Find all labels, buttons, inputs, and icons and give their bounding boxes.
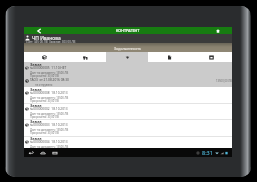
staticText: Долг по документу: 13500 ЛВ bbox=[30, 71, 69, 75]
staticText: Просрочено: 30,00 ЛВ bbox=[30, 74, 59, 78]
button[interactable]: Documents bbox=[24, 52, 65, 62]
staticText: ЧП Иванова bbox=[32, 35, 61, 42]
button[interactable]: Orders bbox=[148, 52, 190, 62]
button[interactable]: Заказ bbox=[24, 103, 232, 119]
staticText: Заказ bbox=[30, 103, 42, 108]
staticText: 8:31 bbox=[202, 149, 213, 156]
button[interactable]: Back bbox=[25, 148, 37, 157]
button[interactable]: Home bbox=[211, 27, 225, 34]
staticText: Долг по документу: 13500 ЛВ bbox=[30, 96, 69, 100]
staticText: Долг по документу: 13500 ЛВ bbox=[30, 128, 69, 132]
staticText: 13500,00 ЛВ bbox=[216, 79, 232, 83]
button[interactable]: Заказ bbox=[24, 62, 232, 87]
staticText: Долг по документу: 13500 ЛВ bbox=[30, 112, 69, 116]
staticText: Заказ bbox=[30, 62, 42, 67]
button[interactable]: Заказ bbox=[24, 87, 232, 103]
button[interactable]: Reports bbox=[190, 52, 232, 62]
staticText: Задолженность bbox=[114, 46, 142, 51]
button[interactable]: Shipments bbox=[65, 52, 106, 62]
staticText: №000000004 18.10.2013 bbox=[30, 140, 68, 144]
staticText: Заказ bbox=[30, 119, 42, 124]
staticText: Просрочено: 30,00 ЛВ bbox=[30, 148, 59, 152]
staticText: Просрочено: 30,00 ЛВ bbox=[30, 131, 59, 135]
staticText: Долг по документу: 13500 ЛВ bbox=[30, 145, 69, 149]
staticText: ТАОЗ от 21.08.2016 08:30 bbox=[30, 78, 69, 82]
button[interactable]: Back bbox=[24, 27, 48, 34]
button[interactable]: Recent apps bbox=[49, 148, 61, 157]
button[interactable]: Заказ bbox=[24, 119, 232, 135]
staticText: Заказ bbox=[30, 136, 42, 141]
button[interactable]: Заказ bbox=[24, 136, 232, 152]
staticText: Заказ bbox=[30, 87, 42, 92]
staticText: №000000002 18.10.2013 bbox=[30, 107, 68, 111]
staticText: №000000008 18.10.2013 bbox=[30, 91, 68, 95]
staticText: Счет: 345,00 ЛВ Заказов: 303,00 ЛВ bbox=[26, 40, 76, 44]
staticText: не отгружено bbox=[35, 83, 53, 87]
staticText: Просрочено: 30,00 ЛВ bbox=[30, 99, 59, 103]
staticText: №000000005 11.10.НЕТ bbox=[30, 66, 67, 70]
staticText: Просрочено: 30,00 ЛВ bbox=[30, 115, 59, 119]
button[interactable]: Debt bbox=[106, 52, 148, 62]
staticText: №000000003 18.10.2013 bbox=[30, 123, 68, 127]
staticText: КОНТРАГЕНТ bbox=[116, 28, 140, 33]
button[interactable]: Home bbox=[37, 148, 49, 157]
